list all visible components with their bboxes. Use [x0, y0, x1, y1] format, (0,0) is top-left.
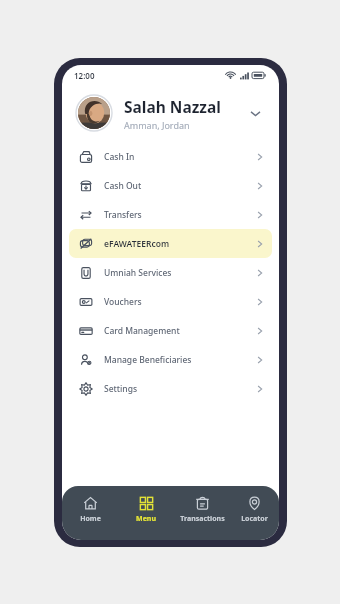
button[interactable]: Card Management — [69, 316, 272, 345]
button[interactable]: eFAWATEERcom — [69, 229, 272, 258]
staticText: Transactions — [180, 514, 225, 524]
staticText: Manage Beneficiaries — [104, 354, 192, 366]
button[interactable]: Sign Out — [74, 500, 267, 527]
button[interactable]: Settings — [69, 374, 272, 403]
staticText: Cash In — [104, 151, 135, 163]
staticText: Transfers — [104, 209, 142, 221]
staticText: Umniah Services — [104, 267, 172, 279]
button[interactable]: Umniah Services — [69, 258, 272, 287]
staticText: Card Management — [104, 325, 180, 337]
staticText: Home — [80, 514, 101, 524]
button[interactable]: Menu — [118, 495, 174, 525]
button[interactable]: Manage Beneficiaries — [69, 345, 272, 374]
button[interactable]: Transfers — [69, 200, 272, 229]
staticText: 12:00 — [74, 70, 95, 81]
staticText: Locator — [241, 514, 268, 524]
button[interactable]: Salah Nazzal — [76, 95, 265, 131]
staticText: Salah Nazzal — [124, 96, 221, 117]
staticText: Sign Out — [152, 508, 190, 520]
button[interactable]: Cash In — [69, 142, 272, 171]
staticText: Cash Out — [104, 180, 142, 192]
button[interactable]: Vouchers — [69, 287, 272, 316]
staticText: Vouchers — [104, 296, 142, 308]
staticText: Menu — [136, 514, 156, 524]
button[interactable]: Expand profile — [245, 103, 265, 123]
button[interactable]: Transactions — [174, 495, 230, 525]
button[interactable]: Cash Out — [69, 171, 272, 200]
staticText: Settings — [104, 383, 138, 395]
staticText: eFAWATEERcom — [104, 238, 170, 250]
staticText: Amman, Jordan — [124, 119, 190, 131]
button[interactable]: Locator — [230, 495, 279, 525]
button[interactable]: Home — [62, 495, 118, 525]
